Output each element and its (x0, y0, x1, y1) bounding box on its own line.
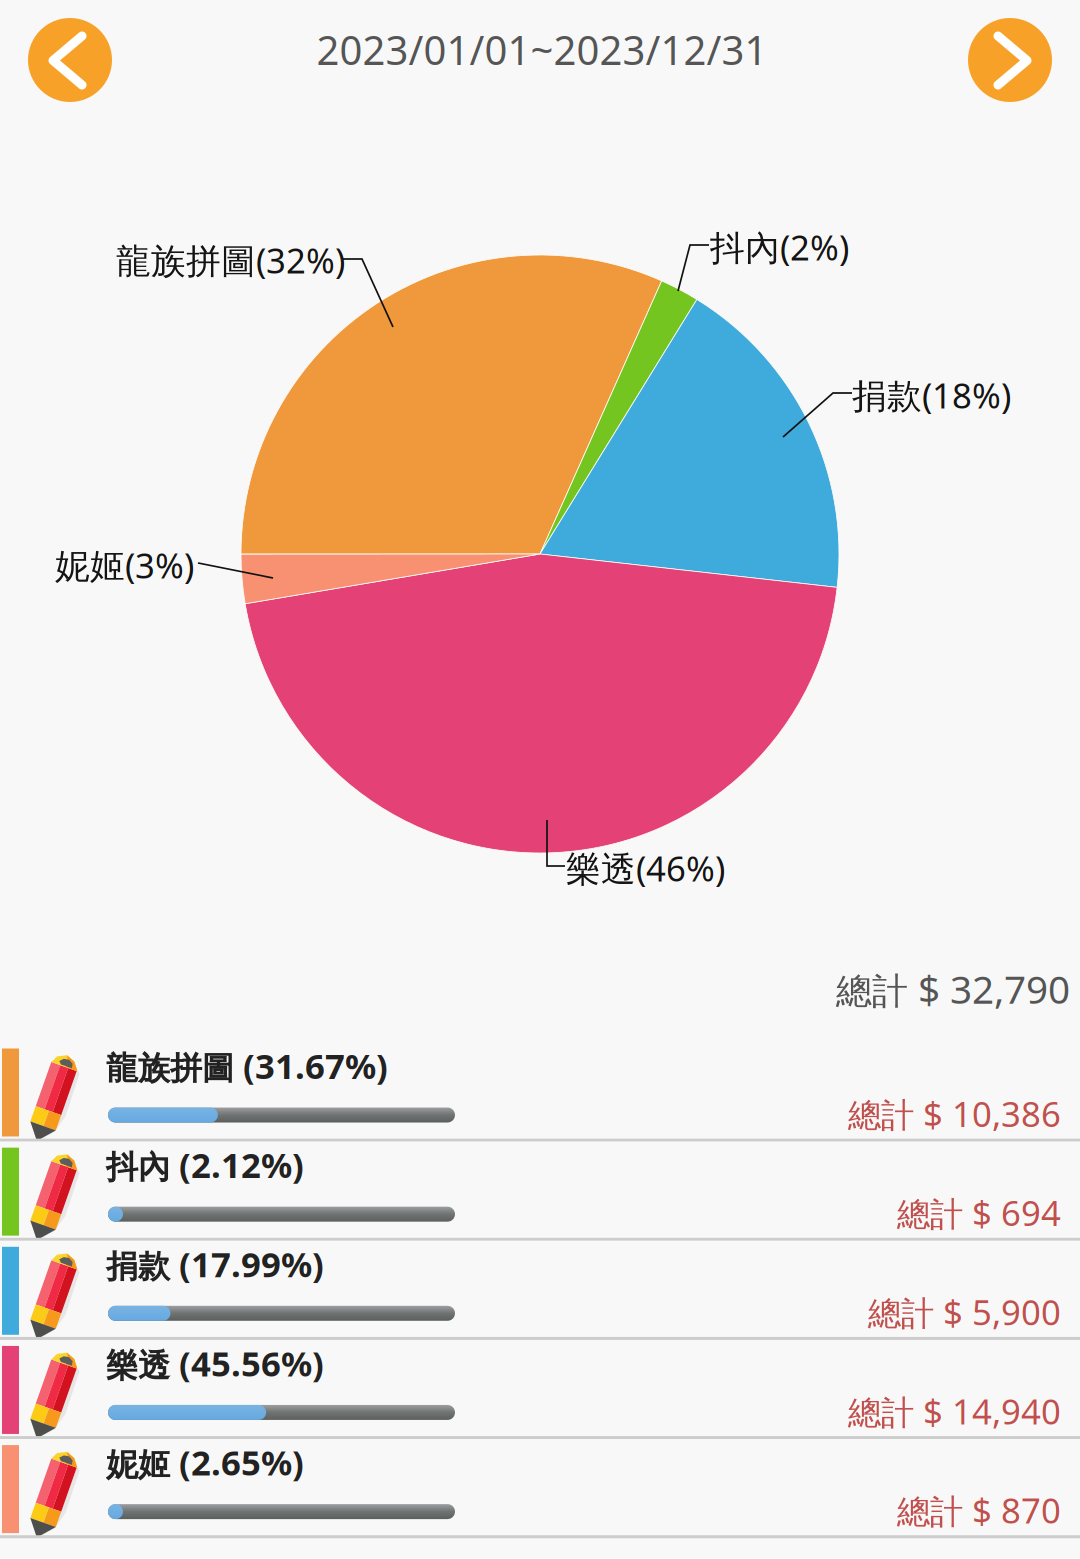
staticText: 總計 $ 870 (897, 1487, 1061, 1533)
button[interactable]: Previous period (28, 18, 112, 102)
staticText: 總計 $ 14,940 (848, 1388, 1061, 1434)
staticText: 總計 $ 10,386 (848, 1090, 1061, 1136)
staticText: 樂透 (45.56%) (106, 1340, 324, 1386)
staticText: 捐款 (17.99%) (106, 1241, 324, 1287)
staticText: 妮姬 (2.65%) (106, 1439, 304, 1485)
staticText: 抖內 (2.12%) (106, 1142, 304, 1188)
staticText: 2023/01/01~2023/12/31 (316, 23, 767, 76)
staticText: 總計 $ 694 (897, 1190, 1061, 1236)
staticText: 妮姬(3%) (55, 542, 194, 588)
staticText: 樂透(46%) (566, 845, 725, 891)
staticText: 總計 $ 5,900 (868, 1289, 1061, 1335)
button[interactable]: 龍族拼圖 (31.67%) (0, 1042, 1080, 1142)
button[interactable]: 抖內 (2.12%) (0, 1142, 1080, 1241)
staticText: 總計 $ 32,790 (836, 963, 1070, 1014)
staticText: 捐款(18%) (852, 372, 1011, 418)
button[interactable]: 樂透 (45.56%) (0, 1340, 1080, 1439)
button[interactable]: 捐款 (17.99%) (0, 1241, 1080, 1340)
staticText: 抖內(2%) (710, 224, 849, 270)
staticText: 龍族拼圖(32%) (116, 237, 345, 283)
button[interactable]: 妮姬 (2.65%) (0, 1439, 1080, 1538)
button[interactable]: Next period (968, 18, 1052, 102)
staticText: 龍族拼圖 (31.67%) (106, 1042, 388, 1088)
